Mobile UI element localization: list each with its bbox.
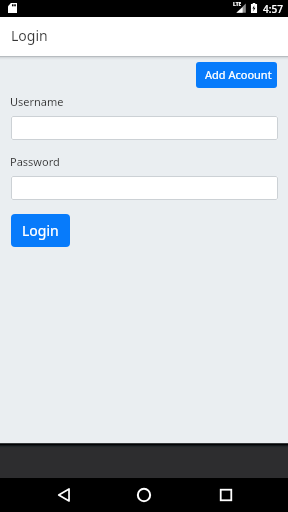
button[interactable]: Home: [128, 479, 160, 511]
staticText: Username: [10, 94, 64, 109]
button[interactable]: Username input field: [11, 116, 278, 140]
staticText: LTE: [233, 1, 242, 8]
button[interactable]: Back: [48, 479, 80, 511]
staticText: Login: [11, 26, 48, 45]
staticText: Password: [10, 154, 60, 169]
button[interactable]: Add Acoount: [196, 62, 277, 88]
button[interactable]: Login: [11, 214, 70, 247]
button[interactable]: Password input field: [11, 176, 278, 200]
staticText: 4:57: [263, 2, 283, 16]
button[interactable]: Recent apps: [210, 479, 242, 511]
staticText: Add Acoount: [205, 67, 272, 82]
staticText: Login: [22, 221, 59, 240]
